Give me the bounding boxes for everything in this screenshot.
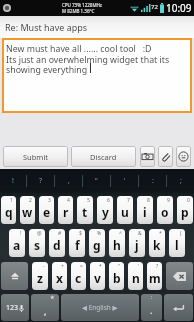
- button[interactable]: ‘: [111, 169, 138, 193]
- button[interactable]: ^: [109, 229, 125, 257]
- button[interactable]: New must have all ...... cool tool :D It…: [2, 38, 192, 113]
- staticText: New must have all ...... cool tool :D It…: [6, 43, 170, 75]
- button[interactable]: (: [169, 229, 185, 257]
- staticText: r: [63, 204, 69, 220]
- staticText: ?: [156, 263, 159, 270]
- button[interactable]: 7: [117, 196, 133, 224]
- button[interactable]: Shift: [1, 262, 28, 290]
- button[interactable]: Numbers and symbols: [1, 294, 29, 321]
- staticText: ': [138, 263, 140, 270]
- staticText: -: [43, 263, 45, 270]
- button[interactable]: ": [109, 262, 124, 290]
- staticText: 8: [147, 197, 150, 204]
- staticText: “: [95, 176, 98, 186]
- button[interactable]: Period: [141, 294, 162, 321]
- staticText: ,: [68, 176, 70, 186]
- button[interactable]: ?: [27, 169, 54, 193]
- staticText: %: [97, 230, 102, 237]
- button[interactable]: 8: [137, 196, 153, 224]
- button[interactable]: +: [52, 262, 67, 290]
- button[interactable]: *: [149, 229, 165, 257]
- button[interactable]: ,: [55, 169, 82, 193]
- staticText: ": [118, 263, 121, 270]
- button[interactable]: &: [129, 229, 145, 257]
- staticText: !: [20, 230, 22, 237]
- staticText: o: [161, 204, 169, 220]
- staticText: v: [94, 270, 101, 286]
- staticText: 9: [167, 197, 170, 204]
- button[interactable]: %: [89, 229, 105, 257]
- staticText: w: [22, 204, 33, 220]
- button[interactable]: @: [29, 229, 45, 257]
- button[interactable]: ?: [147, 262, 162, 290]
- staticText: l: [175, 237, 179, 253]
- staticText: :: [151, 294, 153, 301]
- button[interactable]: “: [83, 169, 110, 193]
- staticText: 72: [151, 3, 158, 11]
- staticText: g: [93, 237, 101, 253]
- button[interactable]: ;: [167, 169, 194, 193]
- staticText: e: [43, 204, 51, 220]
- button[interactable]: Discard: [71, 146, 136, 167]
- staticText: 4: [67, 197, 70, 204]
- button[interactable]: 3: [39, 196, 54, 224]
- staticText: ★: [50, 294, 55, 300]
- staticText: ^: [119, 230, 122, 237]
- button[interactable]: 6: [97, 196, 113, 224]
- staticText: c: [75, 270, 82, 286]
- button[interactable]: #: [49, 229, 65, 257]
- staticText: f: [75, 237, 80, 253]
- button[interactable]: 0: [177, 196, 193, 224]
- staticText: Submit: [23, 152, 49, 162]
- button[interactable]: ': [128, 262, 143, 290]
- staticText: t: [82, 204, 88, 220]
- button[interactable]: Insert photo: [140, 146, 155, 167]
- button[interactable]: Insert emoticon: [176, 146, 191, 167]
- button[interactable]: Submit: [3, 146, 68, 167]
- button[interactable]: -: [32, 262, 48, 290]
- staticText: 123: [6, 303, 19, 313]
- staticText: ;: [180, 176, 182, 186]
- staticText: .: [150, 304, 153, 316]
- button[interactable]: !: [9, 229, 25, 257]
- staticText: m: [149, 270, 161, 286]
- staticText: *: [99, 263, 102, 270]
- button[interactable]: !: [0, 169, 26, 193]
- staticText: M 82MB 1.36°C: [62, 8, 95, 14]
- staticText: CPU 73% 1228MHz: [62, 2, 102, 8]
- staticText: ?: [39, 176, 43, 186]
- button[interactable]: Attach file: [158, 146, 173, 167]
- other: Alarm: [2, 3, 12, 13]
- staticText: n: [132, 270, 140, 286]
- staticText: :: [152, 176, 154, 186]
- staticText: (: [180, 230, 182, 237]
- button[interactable]: 4: [58, 196, 73, 224]
- button[interactable]: Space: [61, 294, 139, 321]
- staticText: x: [56, 270, 63, 286]
- staticText: 6: [107, 197, 110, 204]
- button[interactable]: $: [69, 229, 85, 257]
- button[interactable]: 9: [157, 196, 173, 224]
- staticText: s: [34, 237, 41, 253]
- button[interactable]: *: [90, 262, 105, 290]
- staticText: Re: Must have apps: [5, 21, 88, 33]
- staticText: b: [113, 270, 121, 286]
- staticText: y: [102, 204, 109, 220]
- staticText: 1: [10, 197, 13, 204]
- staticText: k: [153, 237, 161, 253]
- staticText: Discard: [90, 152, 117, 162]
- staticText: 3: [48, 197, 51, 204]
- staticText: u: [121, 204, 129, 220]
- button[interactable]: Enter: [164, 294, 193, 321]
- button[interactable]: 5: [77, 196, 93, 224]
- button[interactable]: 1: [1, 196, 16, 224]
- staticText: #: [58, 230, 62, 237]
- staticText: i: [143, 204, 147, 220]
- button[interactable]: Backspace: [166, 262, 193, 290]
- button[interactable]: =: [71, 262, 86, 290]
- button[interactable]: Comma: [31, 294, 59, 321]
- staticText: *: [159, 230, 162, 237]
- staticText: !: [12, 176, 14, 186]
- button[interactable]: 2: [20, 196, 35, 224]
- button[interactable]: :: [139, 169, 166, 193]
